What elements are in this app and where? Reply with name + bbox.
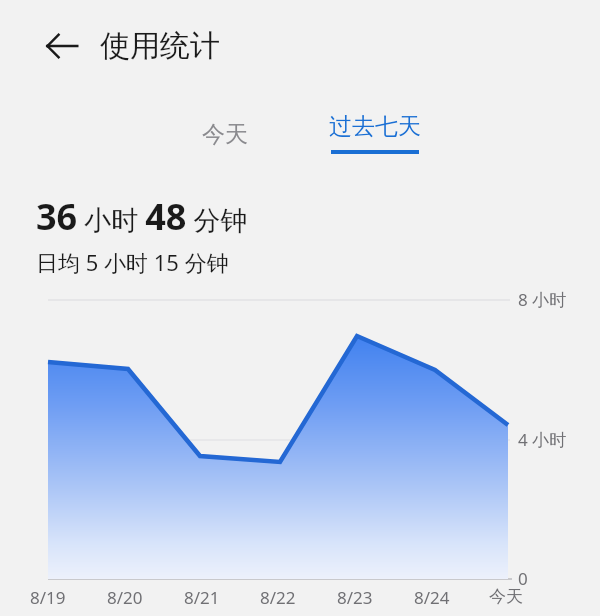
- staticText: 今天: [202, 120, 248, 149]
- staticText: 8/21: [184, 586, 220, 609]
- staticText: 日均 5 小时 15 分钟: [36, 247, 229, 277]
- staticText: 8/24: [414, 586, 450, 609]
- staticText: 36 小时 48 分钟: [36, 192, 248, 241]
- staticText: 使用统计: [100, 27, 220, 65]
- staticText: 4 小时: [518, 428, 567, 451]
- staticText: 8/22: [260, 586, 296, 609]
- staticText: 今天: [489, 586, 523, 607]
- button[interactable]: Back: [34, 18, 90, 74]
- button[interactable]: 今天: [180, 112, 270, 156]
- staticText: 8/20: [107, 586, 143, 609]
- staticText: 8 小时: [518, 288, 567, 311]
- staticText: 过去七天: [329, 112, 421, 141]
- staticText: 8/19: [30, 586, 66, 609]
- staticText: 0: [518, 567, 528, 590]
- button[interactable]: 过去七天: [318, 112, 432, 164]
- staticText: 8/23: [337, 586, 373, 609]
